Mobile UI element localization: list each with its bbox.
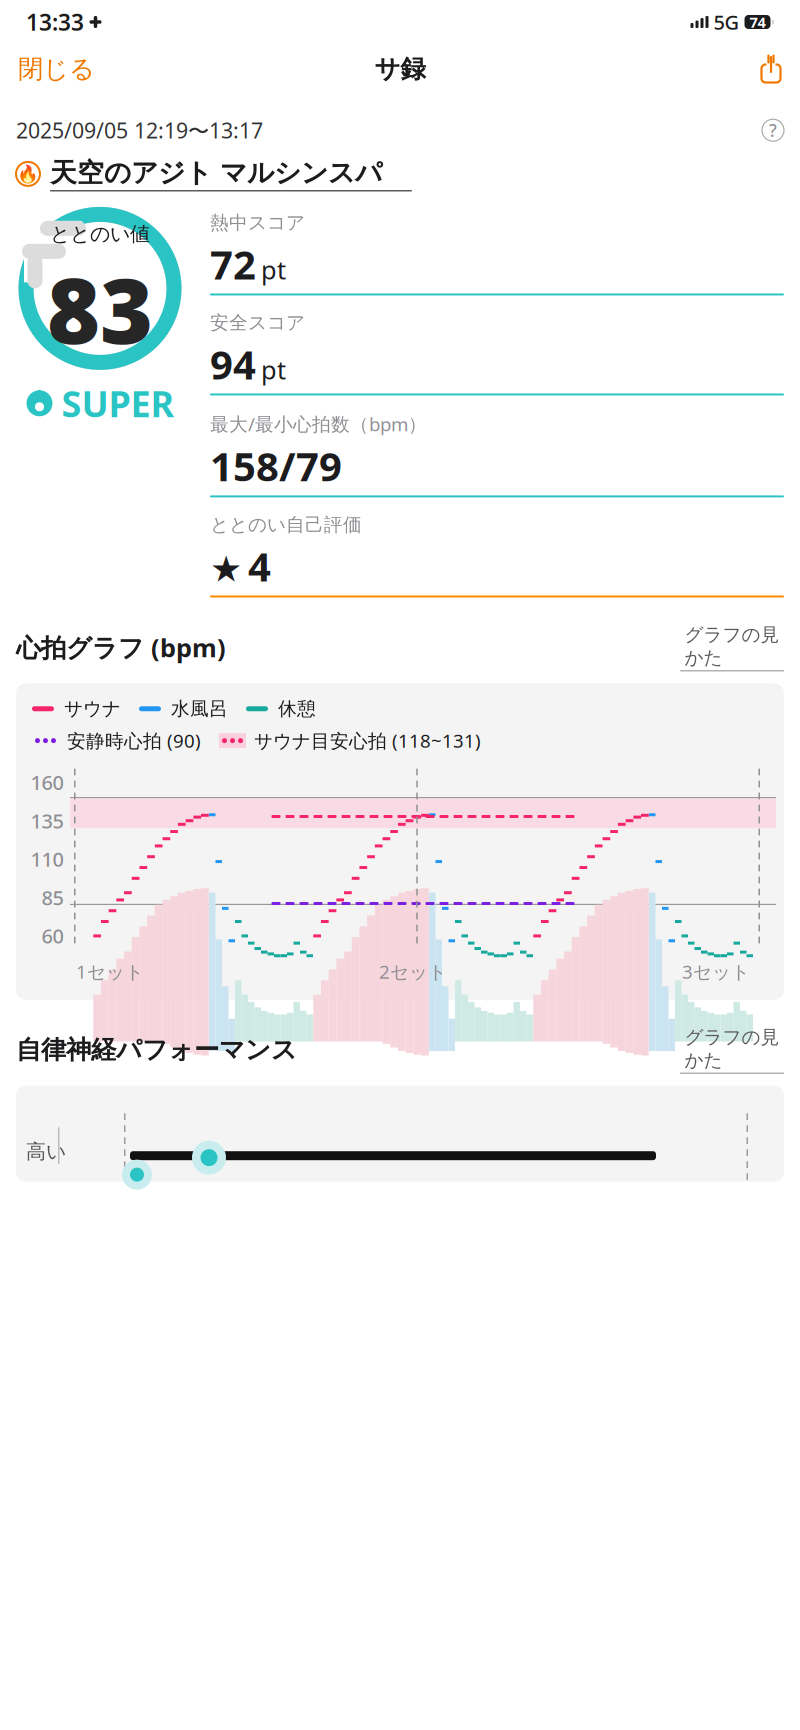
staticText: 1セット [76,959,144,984]
staticText: サ録 [374,53,425,84]
staticText: 心拍グラフ (bpm) [16,631,226,664]
staticText: 5G [713,9,739,35]
staticText: 2025/09/05 12:19〜13:17 [16,116,263,144]
staticText: 83 [47,248,153,369]
staticText: 水風呂 [171,697,228,720]
staticText: サウナ [64,697,121,720]
staticText: 天空のアジト マルシンスパ [50,156,382,189]
staticText: 160 [30,769,63,796]
staticText: 85 [41,884,63,911]
button[interactable]: ヘルプ [762,119,784,141]
staticText: 安全スコア [210,311,305,334]
staticText: 110 [30,846,63,872]
staticText: 閉じる [18,53,95,84]
staticText: 4 [248,539,271,592]
staticText: 3セット [682,959,750,984]
staticText: 135 [30,807,63,834]
staticText: 74 [749,12,765,32]
staticText: グラフの見かた [684,1026,779,1072]
staticText: 72 [210,237,256,290]
staticText: 高い [26,1139,66,1164]
staticText: SUPER [61,379,174,427]
staticText: ととのい値 [50,222,150,246]
staticText: ととのい自己評価 [210,513,362,536]
staticText: pt [261,353,286,386]
button[interactable]: 閉じる [2,45,111,92]
staticText: サウナ目安心拍 (118~131) [254,728,481,753]
staticText: 60 [41,922,63,949]
staticText: 🔥 [17,164,39,184]
staticText: 94 [210,337,256,390]
staticText: 13:33 [26,7,84,37]
staticText: 自律神経パフォーマンス [16,1034,297,1065]
staticText: 安静時心拍 (90) [67,728,201,753]
staticText: 2セット [379,959,447,984]
button[interactable]: グラフの見かた [680,1026,784,1074]
staticText: 158/79 [210,439,342,492]
staticText: pt [261,253,286,286]
button[interactable]: グラフの見かた [680,623,784,671]
staticText: 最大/最小心拍数（bpm） [210,411,427,436]
staticText: 休憩 [278,697,316,720]
staticText: 熱中スコア [210,211,305,234]
staticText: ? [769,119,777,142]
button[interactable]: 🔥 [0,144,800,191]
button[interactable]: 共有 [744,50,798,88]
staticText: グラフの見かた [684,623,779,669]
staticText: ★ [210,548,242,589]
